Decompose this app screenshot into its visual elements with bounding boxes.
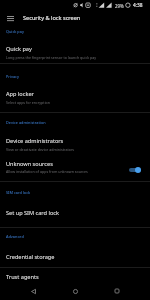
staticText: Select apps for encryption: [6, 100, 50, 105]
staticText: SIM card lock: [6, 190, 31, 195]
staticText: Advanced: [6, 234, 24, 239]
button[interactable]: Navigate up: [3, 11, 18, 26]
staticText: 4:38: [133, 2, 143, 9]
button[interactable]: Set up SIM card lock: [0, 203, 150, 225]
staticText: Credential storage: [6, 253, 55, 261]
button[interactable]: Unknown sources switch, on: [127, 163, 145, 177]
staticText: 29%: [115, 3, 124, 9]
staticText: Quick pay: [6, 29, 24, 34]
staticText: App locker: [6, 90, 34, 98]
staticText: Trust agents: [6, 273, 39, 281]
staticText: Allow installation of apps from unknown …: [6, 169, 88, 174]
button[interactable]: Quick pay: [0, 36, 150, 62]
staticText: Security & lock screen: [23, 14, 81, 22]
staticText: View or deactivate device administrators: [6, 147, 75, 152]
staticText: Set up SIM card lock: [6, 209, 59, 217]
staticText: Long press the fingerprint sensor to lau…: [6, 55, 97, 60]
button[interactable]: Back: [24, 282, 42, 300]
button[interactable]: Credential storage: [0, 247, 150, 267]
button[interactable]: Recents: [108, 282, 126, 300]
staticText: Quick pay: [6, 45, 32, 53]
button[interactable]: App locker: [0, 85, 150, 111]
staticText: Device administration: [6, 120, 46, 125]
staticText: Device administrators: [6, 137, 64, 145]
staticText: Privacy: [6, 74, 19, 79]
button[interactable]: Device administrators: [0, 131, 150, 154]
button[interactable]: Unknown sources: [0, 154, 150, 180]
button[interactable]: Trust agents: [0, 268, 150, 282]
button[interactable]: Home: [66, 282, 84, 300]
staticText: Unknown sources: [6, 160, 53, 168]
